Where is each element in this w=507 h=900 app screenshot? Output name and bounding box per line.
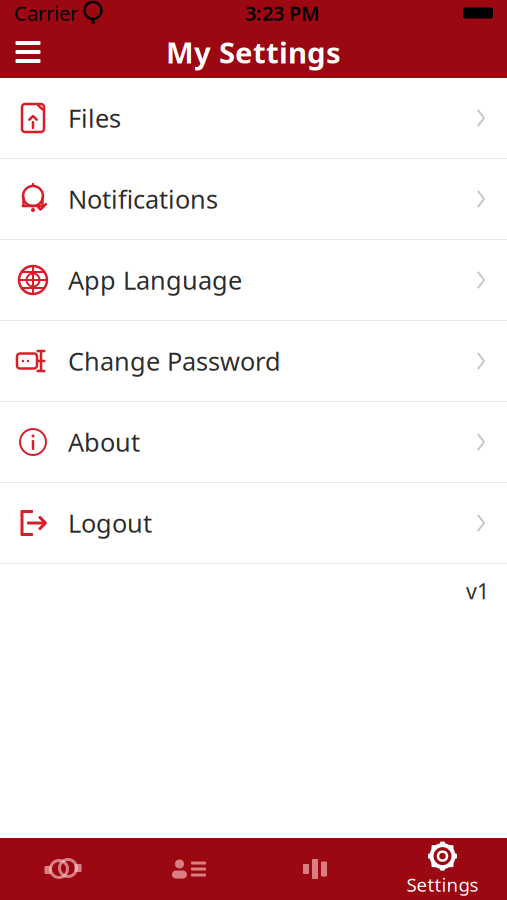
staticText: Change Password: [68, 344, 281, 378]
button[interactable]: Settings: [378, 838, 507, 900]
button[interactable]: About: [0, 402, 507, 482]
button[interactable]: Reports: [252, 838, 378, 900]
button[interactable]: Menu: [2, 26, 54, 78]
button[interactable]: Notifications: [0, 159, 507, 239]
staticText: App Language: [68, 263, 242, 297]
button[interactable]: Logout: [0, 483, 507, 563]
button[interactable]: Contacts: [126, 838, 252, 900]
button[interactable]: Change Password: [0, 321, 507, 401]
button[interactable]: Files: [0, 78, 507, 158]
staticText: About: [68, 425, 140, 459]
staticText: Carrier: [14, 0, 78, 26]
staticText: Settings: [406, 872, 478, 897]
staticText: Logout: [68, 506, 152, 540]
staticText: Notifications: [68, 182, 218, 216]
staticText: Files: [68, 101, 121, 135]
staticText: v1: [466, 577, 489, 605]
staticText: My Settings: [166, 32, 341, 71]
staticText: 3:23 PM: [245, 0, 320, 26]
button[interactable]: Deals: [0, 838, 126, 900]
button[interactable]: App Language: [0, 240, 507, 320]
